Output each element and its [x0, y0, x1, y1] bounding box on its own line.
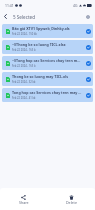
- staticText: Feb 22 2024 - 32 kb: [12, 80, 36, 84]
- button[interactable]: Share: [0, 188, 47, 210]
- staticText: ~$Thong ke so luong TICL.xlsx: [12, 42, 66, 47]
- button[interactable]: ~$Tong hop cac Services chay tren may TI…: [2, 56, 93, 70]
- button[interactable]: Delete: [47, 188, 95, 210]
- staticText: Tong hop cac Services chay tren may TICL…: [12, 90, 82, 95]
- staticText: Share: [19, 200, 29, 205]
- staticText: Feb 22 2024 - 165 b: [12, 64, 36, 68]
- staticText: 4G: [73, 3, 78, 8]
- staticText: ~$Tong hop cac Services chay tren may TI…: [12, 58, 82, 63]
- staticText: Feb 22 2024 - 41 kb: [12, 96, 36, 100]
- staticText: Feb 22 2024 - 150 kb: [12, 32, 37, 36]
- button[interactable]: Thong ke so luong may TICL.xls: [2, 72, 93, 86]
- button[interactable]: More options: [82, 11, 93, 22]
- staticText: 11:41: [5, 3, 14, 8]
- staticText: Thong ke so luong may TICL.xls: [12, 74, 69, 79]
- button[interactable]: Tong hop cac Services chay tren may TICL…: [2, 88, 93, 102]
- staticText: Delete: [66, 200, 77, 205]
- button[interactable]: Back: [0, 11, 11, 22]
- staticText: 5 Selected: [13, 14, 35, 20]
- staticText: Feb 22 2024 - 165 b: [12, 48, 36, 52]
- staticText: Báo giá XTV1 Spyweb_Dinhky.xls: [12, 26, 70, 31]
- button[interactable]: ~$Thong ke so luong TICL.xlsx: [2, 40, 93, 54]
- button[interactable]: Báo giá XTV1 Spyweb_Dinhky.xls: [2, 24, 93, 38]
